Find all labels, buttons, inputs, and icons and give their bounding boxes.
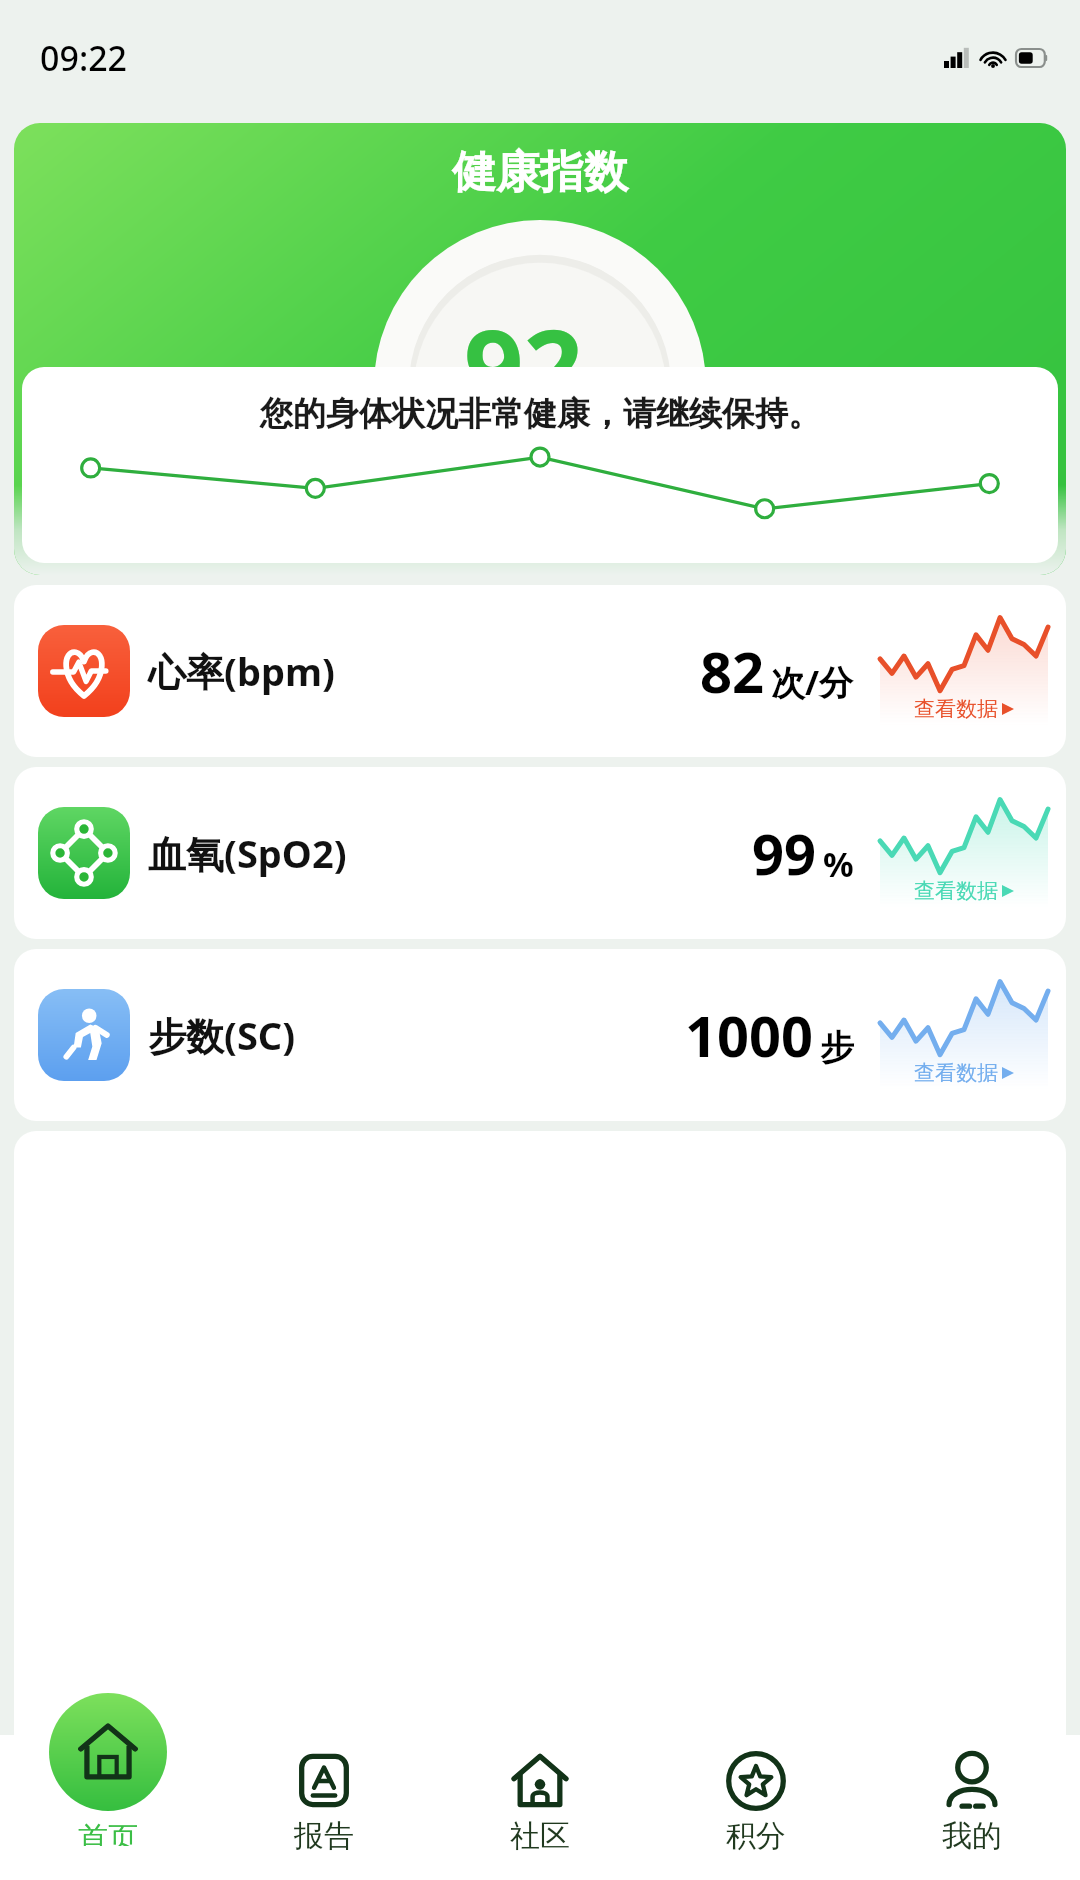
staticText: 报告	[294, 1817, 354, 1855]
staticText: 健康指数	[452, 145, 628, 200]
staticText: 查看数据	[914, 878, 998, 904]
other: 报告	[293, 1753, 355, 1809]
button[interactable]: 积分	[648, 1735, 864, 1880]
staticText: 我的	[942, 1817, 1002, 1855]
staticText: 首页	[78, 1819, 138, 1846]
staticText: 积分	[726, 1817, 786, 1855]
other: 社区	[509, 1753, 571, 1809]
button[interactable]: 报告	[216, 1735, 432, 1880]
staticText: 查看数据	[914, 696, 998, 722]
staticText: %	[823, 841, 854, 887]
staticText: — 健康 —	[473, 438, 609, 479]
staticText: 99	[752, 815, 817, 891]
staticText: 次/分	[771, 659, 854, 705]
staticText: 步数(SC)	[148, 1009, 296, 1061]
button[interactable]: 社区	[432, 1735, 648, 1880]
staticText: 您的身体状况非常健康，请继续保持。	[260, 393, 821, 435]
staticText: 血氧(SpO2)	[148, 827, 347, 879]
other: 首页	[77, 1721, 139, 1783]
staticText: 分	[585, 382, 617, 422]
other: 我的	[941, 1753, 1003, 1809]
staticText: 心率(bpm)	[148, 645, 335, 697]
staticText: 1000	[685, 997, 814, 1073]
staticText: 社区	[510, 1817, 570, 1855]
button[interactable]: 我的	[864, 1735, 1080, 1880]
staticText: 82	[700, 633, 765, 709]
button[interactable]: 步数(SC)	[14, 949, 1066, 1121]
button[interactable]: 血氧(SpO2)	[14, 767, 1066, 939]
button[interactable]: 心率(bpm)	[14, 585, 1066, 757]
other: 积分	[725, 1753, 787, 1809]
button[interactable]: 首页	[0, 1735, 216, 1880]
staticText: 步	[820, 1026, 854, 1069]
staticText: 92	[464, 294, 583, 436]
staticText: 09:22	[40, 35, 128, 81]
staticText: 查看数据	[914, 1060, 998, 1086]
